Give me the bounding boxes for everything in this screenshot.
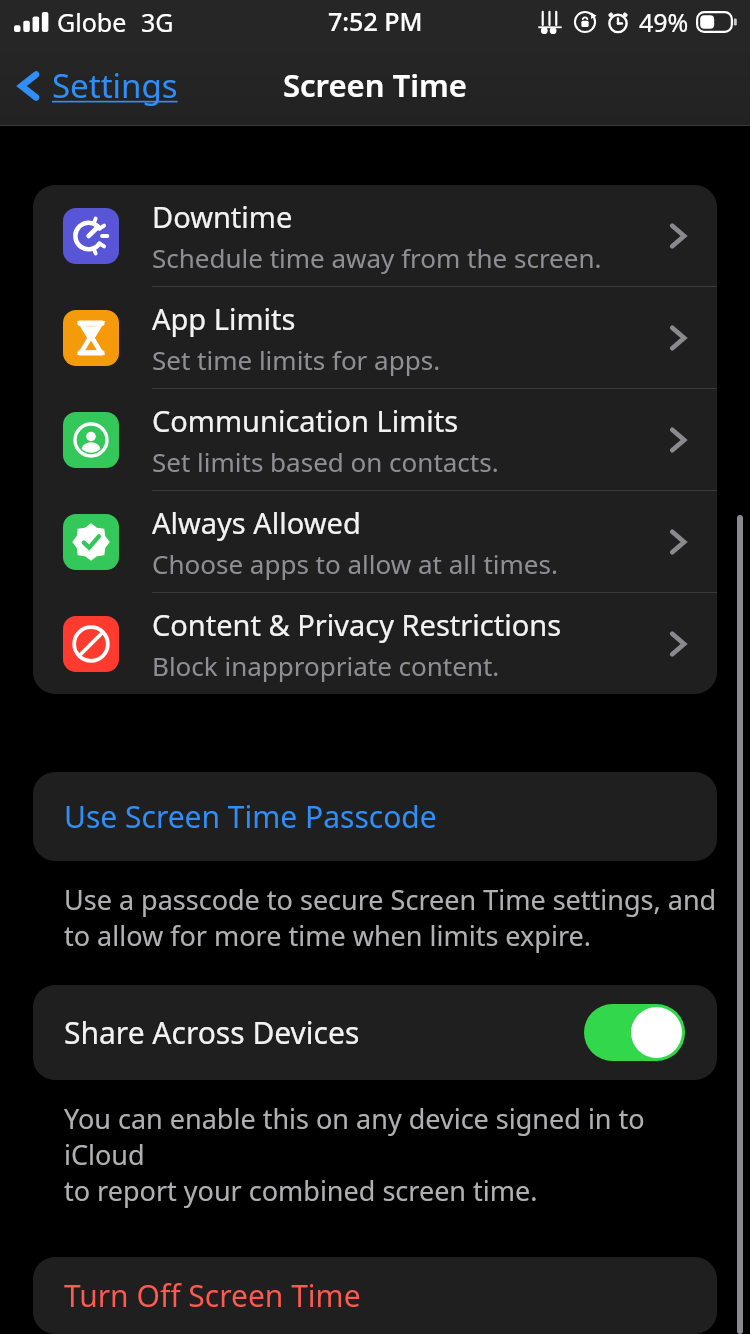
staticText: Always Allowed — [152, 503, 361, 542]
button[interactable]: Downtime — [33, 185, 717, 286]
staticText: Set limits based on contacts. — [152, 444, 499, 479]
button[interactable]: Share Across Devices — [33, 985, 717, 1080]
staticText: 7:52 PM — [328, 4, 423, 38]
button[interactable]: Always Allowed — [33, 491, 717, 592]
staticText: Choose apps to allow at all times. — [152, 546, 558, 581]
button[interactable]: Use Screen Time Passcode — [33, 772, 717, 861]
staticText: Turn Off Screen Time — [64, 1275, 361, 1316]
staticText: App Limits — [152, 299, 296, 338]
staticText: Share Across Devices — [64, 1012, 360, 1053]
staticText: Content & Privacy Restrictions — [152, 605, 562, 644]
staticText: You can enable this on any device signed… — [64, 1100, 726, 1209]
button[interactable]: Settings — [14, 57, 182, 114]
button[interactable]: Content & Privacy Restrictions — [33, 593, 717, 694]
staticText: Screen Time — [283, 64, 467, 106]
staticText: Communication Limits — [152, 401, 459, 440]
staticText: Use Screen Time Passcode — [64, 796, 437, 837]
staticText: Settings — [52, 63, 178, 108]
staticText: Downtime — [152, 197, 293, 236]
staticText: Globe — [57, 5, 127, 39]
button[interactable]: App Limits — [33, 287, 717, 388]
staticText: 3G — [141, 5, 174, 39]
staticText: 49% — [639, 5, 689, 39]
button[interactable]: Turn Off Screen Time — [33, 1257, 717, 1334]
button[interactable]: Communication Limits — [33, 389, 717, 490]
staticText: Block inappropriate content. — [152, 648, 500, 683]
button[interactable]: Share Across Devices toggle, on — [584, 1004, 685, 1061]
staticText: Use a passcode to secure Screen Time set… — [64, 881, 717, 954]
staticText: Schedule time away from the screen. — [152, 240, 602, 275]
staticText: Set time limits for apps. — [152, 342, 441, 377]
